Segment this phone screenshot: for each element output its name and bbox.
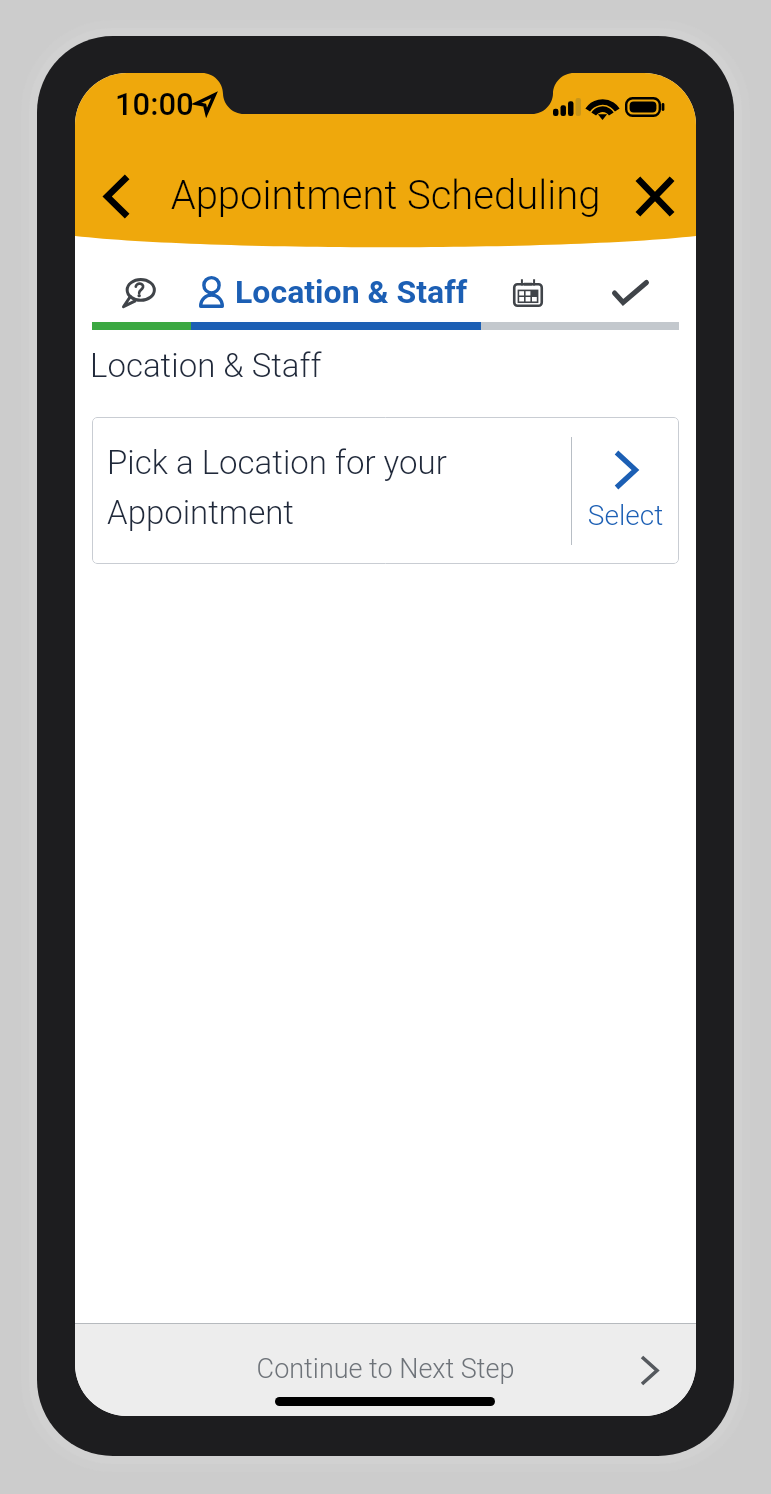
button[interactable]: Continue to Next Step — [75, 1323, 696, 1416]
staticText: Select — [572, 499, 679, 532]
other: Next — [624, 1347, 674, 1393]
button[interactable]: Pick a Location for your Appointment — [92, 417, 679, 564]
button[interactable]: Confirm — [596, 261, 664, 323]
button[interactable]: Back — [83, 163, 149, 229]
button[interactable]: Close — [622, 163, 688, 229]
staticText: Location & Staff — [235, 273, 468, 311]
staticText: Continue to Next Step — [75, 1353, 696, 1385]
staticText: 10:00 — [115, 86, 194, 122]
staticText: Appointment Scheduling — [75, 172, 696, 219]
staticText: Location & Staff — [90, 346, 322, 385]
button[interactable]: Questions — [105, 261, 173, 323]
button[interactable]: Date and time — [495, 261, 561, 323]
button[interactable]: Location & Staff — [199, 261, 468, 323]
staticText: Pick a Location for your Appointment — [107, 443, 555, 532]
